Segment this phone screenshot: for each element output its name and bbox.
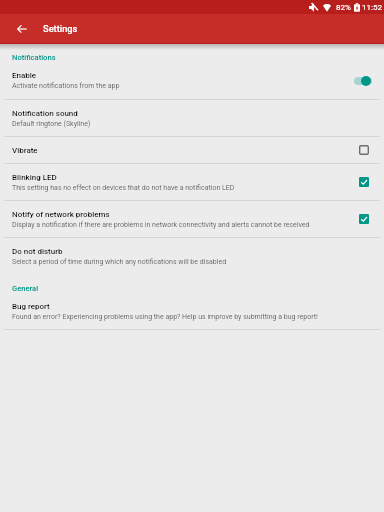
staticText: Found an error? Experiencing problems us… [12, 313, 318, 321]
button[interactable]: Do not disturb [0, 238, 384, 274]
staticText: Display a notification if there are prob… [12, 221, 310, 229]
staticText: Select a period of time during which any… [12, 258, 227, 266]
button[interactable]: Back [8, 15, 36, 43]
staticText: General [12, 284, 39, 293]
staticText: 82% [336, 3, 351, 12]
staticText: Bug report [12, 302, 50, 311]
button[interactable]: Blinking LED [0, 164, 384, 200]
staticText: Enable [12, 71, 37, 80]
staticText: Blinking LED [12, 173, 57, 182]
staticText: Settings [43, 23, 78, 34]
staticText: Vibrate [12, 146, 38, 155]
button[interactable]: Enable [0, 62, 384, 99]
staticText: Activate notifications from the app [12, 82, 120, 90]
staticText: Notifications [12, 53, 56, 62]
staticText: Default ringtone (Skyline) [12, 120, 91, 128]
staticText: Notify of network problems [12, 210, 110, 219]
staticText: This setting has no effect on devices th… [12, 184, 235, 192]
staticText: 11:52 [362, 3, 382, 12]
button[interactable]: Notify of network problems [0, 201, 384, 237]
button[interactable]: Bug report [0, 293, 384, 329]
staticText: Notification sound [12, 109, 78, 118]
button[interactable]: Vibrate [0, 137, 384, 163]
staticText: Do not disturb [12, 247, 63, 256]
button[interactable]: Notification sound [0, 100, 384, 136]
